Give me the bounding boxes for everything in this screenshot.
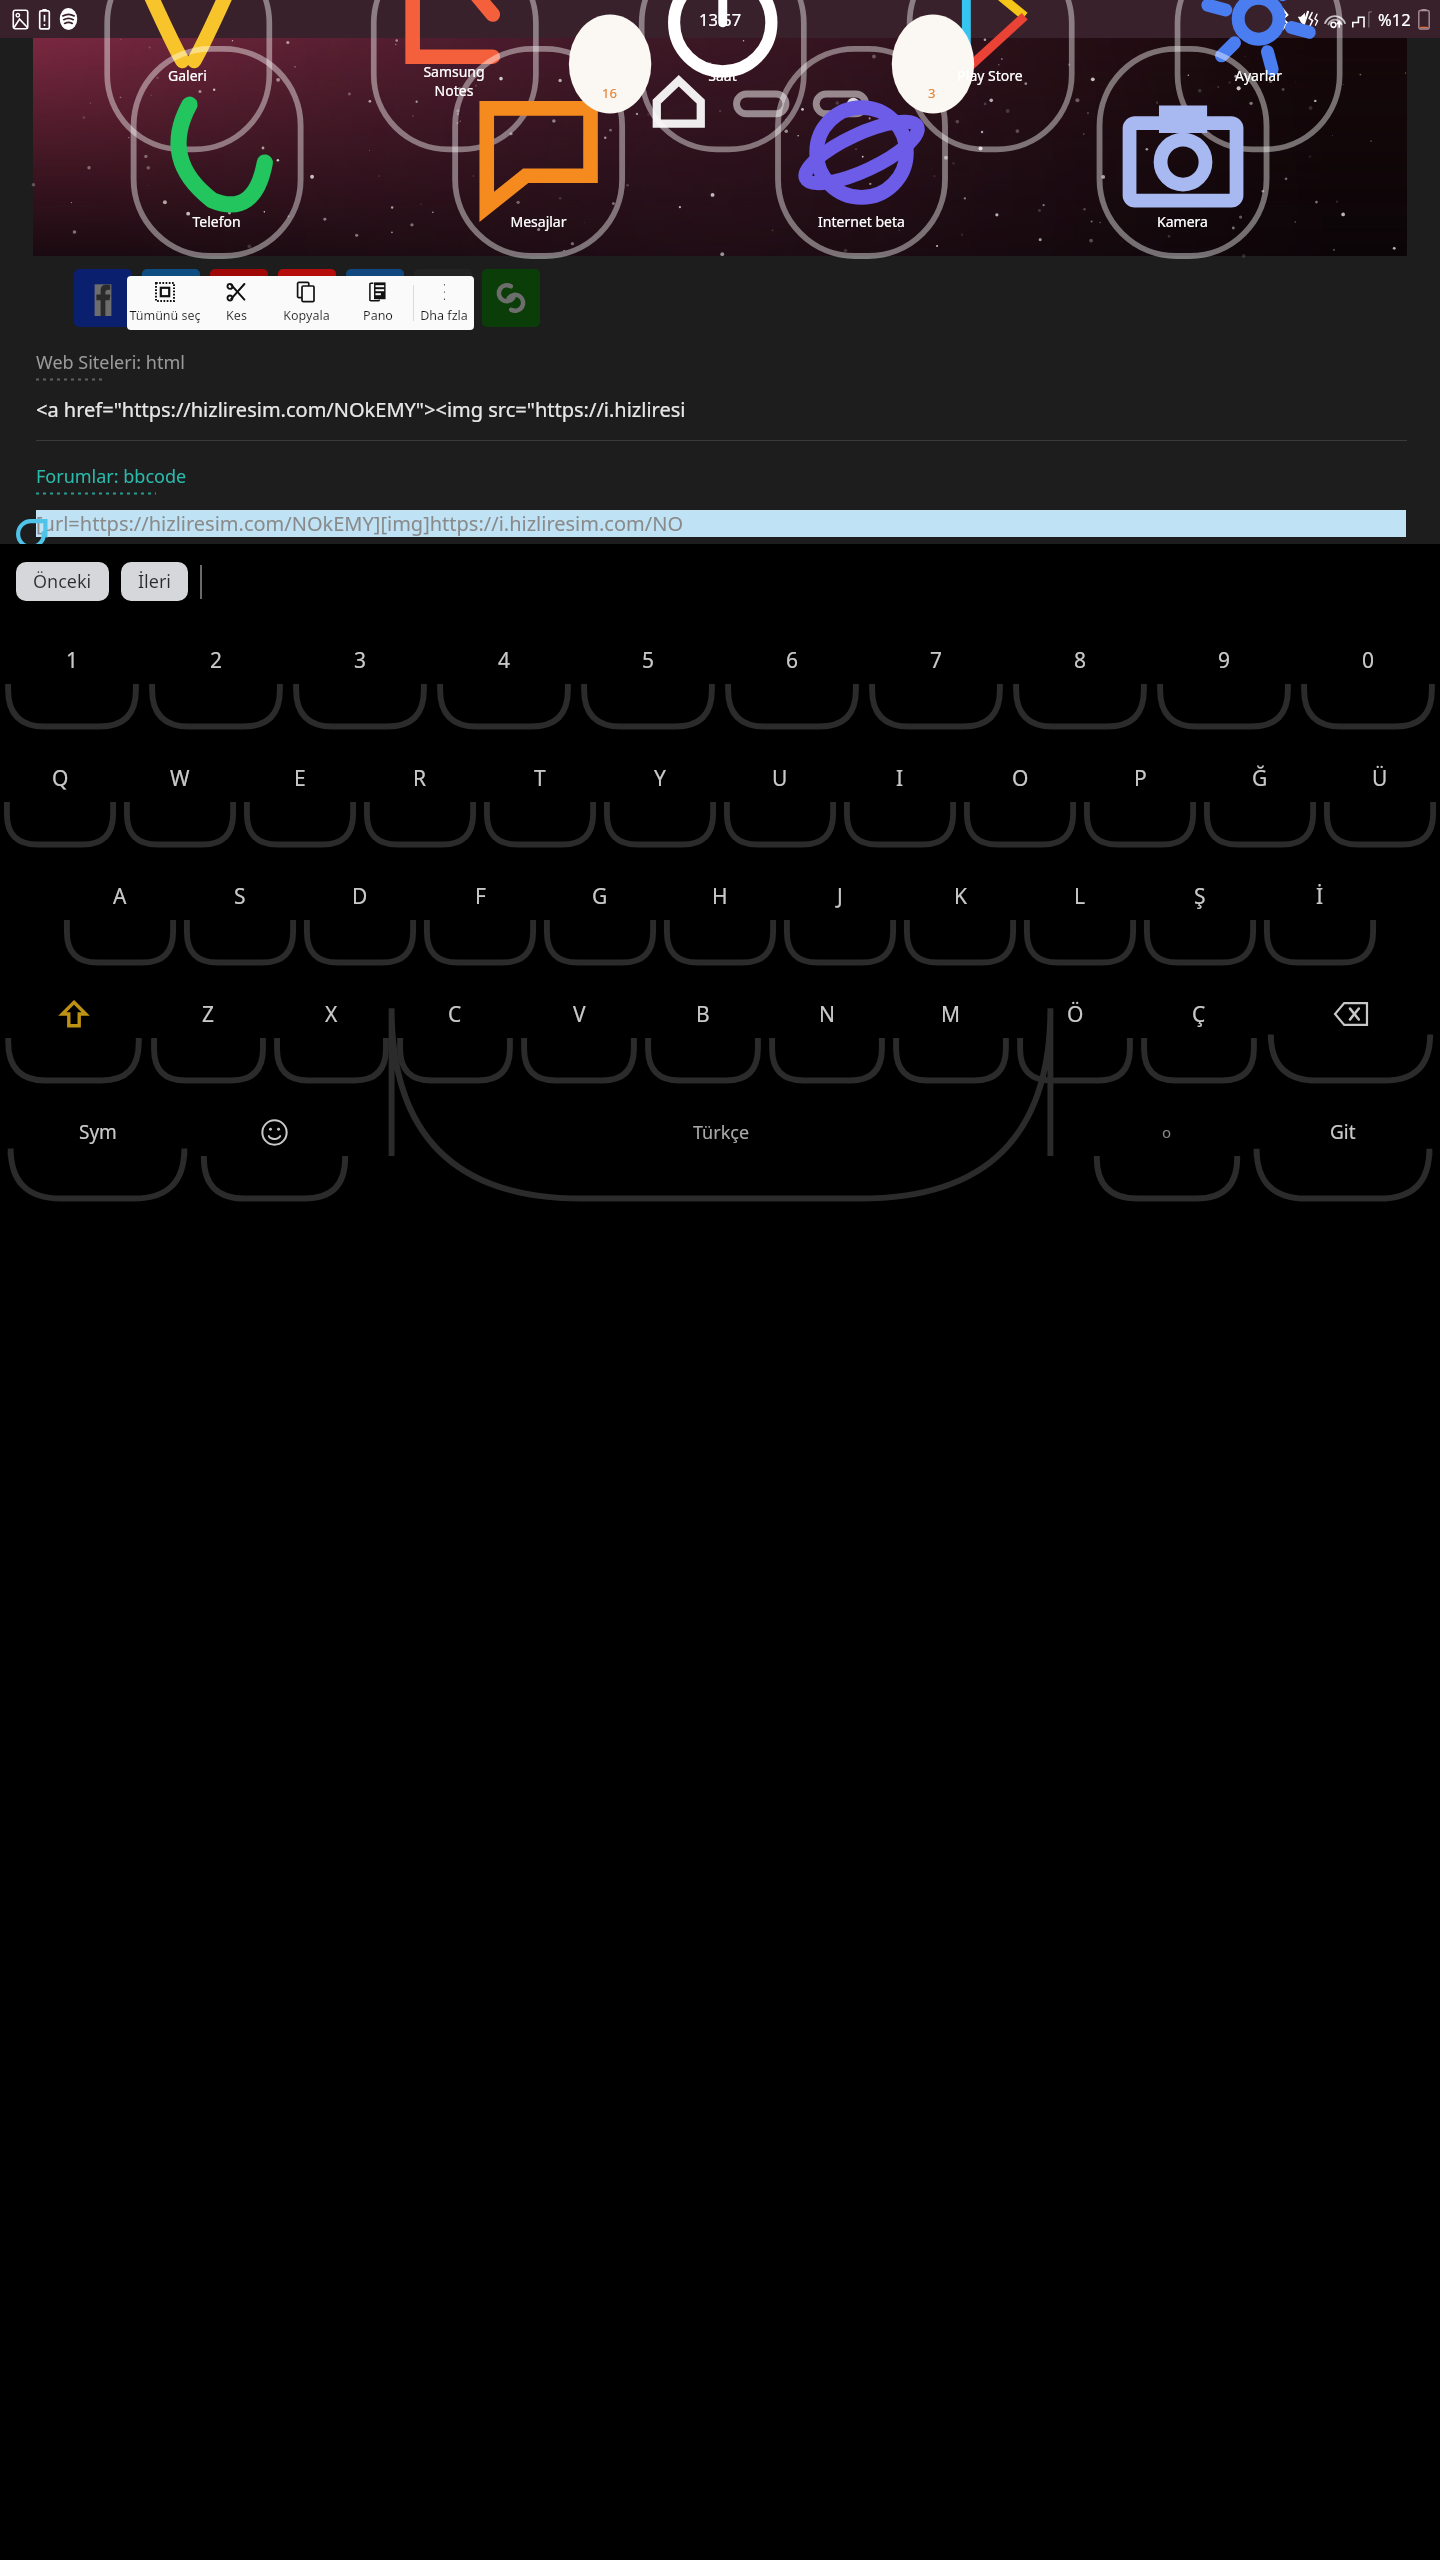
button[interactable]: 6 — [721, 618, 863, 736]
button[interactable]: 3 — [289, 618, 431, 736]
staticText: C — [448, 1000, 462, 1029]
staticText: 2 — [210, 646, 223, 675]
staticText: I — [896, 764, 904, 793]
button[interactable]: Share 3 — [278, 269, 336, 327]
staticText: K — [954, 882, 967, 911]
staticText: H — [712, 882, 728, 911]
staticText: Web Siteleri: html — [36, 350, 185, 375]
staticText: 0 — [1362, 646, 1375, 675]
button[interactable]: 7 — [865, 618, 1007, 736]
staticText: W — [170, 764, 190, 793]
button[interactable]: T — [481, 736, 599, 854]
button[interactable]: Tümünü seç — [127, 276, 203, 330]
button[interactable]: P — [1081, 736, 1199, 854]
staticText: 9 — [1218, 646, 1231, 675]
staticText: Telefon — [192, 212, 241, 231]
button[interactable]: Y — [601, 736, 719, 854]
button[interactable]: 8 — [1009, 618, 1151, 736]
staticText: T — [534, 764, 546, 793]
button[interactable]: Ç — [1138, 972, 1260, 1090]
staticText: O — [1012, 764, 1029, 793]
button[interactable]: Kes — [203, 276, 269, 330]
button[interactable]: J — [781, 854, 899, 972]
button[interactable]: o — [1089, 1090, 1245, 1208]
button[interactable]: Share 2 — [210, 269, 268, 327]
staticText: A — [113, 882, 127, 911]
button[interactable]: E — [241, 736, 359, 854]
button[interactable]: Share 4 — [346, 269, 404, 327]
button[interactable]: İ — [1261, 854, 1379, 972]
button[interactable]: M — [890, 972, 1012, 1090]
staticText: o — [1162, 1122, 1172, 1142]
button[interactable]: 2 — [145, 618, 287, 736]
button[interactable]: D — [301, 854, 419, 972]
staticText: İleri — [138, 569, 171, 594]
button[interactable]: Share 5 — [414, 269, 472, 327]
button[interactable]: R — [361, 736, 479, 854]
button[interactable]: Shift — [1, 972, 146, 1090]
button[interactable]: 0 — [1297, 618, 1439, 736]
button[interactable]: Dha fzla — [414, 276, 474, 330]
button[interactable]: H — [661, 854, 779, 972]
button[interactable]: Ğ — [1201, 736, 1319, 854]
button[interactable]: O — [961, 736, 1079, 854]
button[interactable]: Ş — [1141, 854, 1259, 972]
button[interactable]: W — [121, 736, 239, 854]
button[interactable]: K — [901, 854, 1019, 972]
button[interactable]: Z — [148, 972, 269, 1090]
staticText: Türkçe — [693, 1120, 750, 1145]
staticText: Q — [52, 764, 69, 793]
button[interactable]: Ü — [1321, 736, 1439, 854]
staticText: X — [325, 1000, 338, 1029]
staticText: İ — [1316, 882, 1324, 911]
staticText: Ç — [1192, 1000, 1206, 1029]
staticText: 1 — [66, 646, 79, 675]
button[interactable]: I — [841, 736, 959, 854]
button[interactable]: İleri — [121, 562, 188, 601]
button[interactable]: F — [421, 854, 539, 972]
button[interactable]: V — [518, 972, 640, 1090]
staticText: D — [352, 882, 368, 911]
staticText: Önceki — [33, 569, 92, 594]
staticText: S — [234, 882, 246, 911]
button[interactable]: Önceki — [16, 562, 109, 601]
button[interactable]: X — [271, 972, 392, 1090]
button[interactable]: Q — [1, 736, 119, 854]
button[interactable]: L — [1021, 854, 1139, 972]
staticText: U — [772, 764, 788, 793]
staticText: Galeri — [168, 66, 207, 85]
button[interactable]: Kopyala — [269, 276, 343, 330]
button[interactable]: Sym — [1, 1090, 194, 1208]
staticText: <a href="https://hizliresim.com/NOkEMY">… — [36, 396, 686, 423]
button[interactable]: Share 0 — [74, 269, 132, 327]
button[interactable]: Git — [1247, 1090, 1439, 1208]
button[interactable]: 9 — [1153, 618, 1295, 736]
staticText: G — [592, 882, 608, 911]
button[interactable]: U — [721, 736, 839, 854]
button[interactable]: 1 — [1, 618, 143, 736]
button[interactable]: 5 — [577, 618, 719, 736]
button[interactable]: N — [766, 972, 888, 1090]
button[interactable]: Türkçe — [355, 1090, 1087, 1208]
button[interactable]: C — [394, 972, 516, 1090]
staticText: Play Store — [957, 66, 1023, 85]
staticText: Sym — [79, 1119, 117, 1145]
staticText: G+ — [225, 283, 254, 313]
button[interactable]: G — [541, 854, 659, 972]
button[interactable]: B — [642, 972, 764, 1090]
staticText: J — [837, 882, 843, 911]
button[interactable]: S — [181, 854, 299, 972]
button[interactable]: 4 — [433, 618, 575, 736]
button[interactable]: Backspace — [1262, 972, 1439, 1090]
button[interactable]: Ö — [1014, 972, 1136, 1090]
button[interactable]: Share 6 — [482, 269, 540, 327]
button[interactable]: Emoji — [196, 1090, 353, 1208]
staticText: Kopyala — [283, 307, 330, 324]
staticText: Tümünü seç — [129, 307, 201, 324]
button[interactable]: A — [61, 854, 179, 972]
staticText: Dha fzla — [420, 307, 468, 324]
button[interactable]: Share 1 — [142, 269, 200, 327]
staticText: Git — [1330, 1119, 1356, 1145]
staticText: [url=https://hizliresim.com/NOkEMY][img]… — [36, 510, 683, 537]
button[interactable]: Pano — [343, 276, 413, 330]
